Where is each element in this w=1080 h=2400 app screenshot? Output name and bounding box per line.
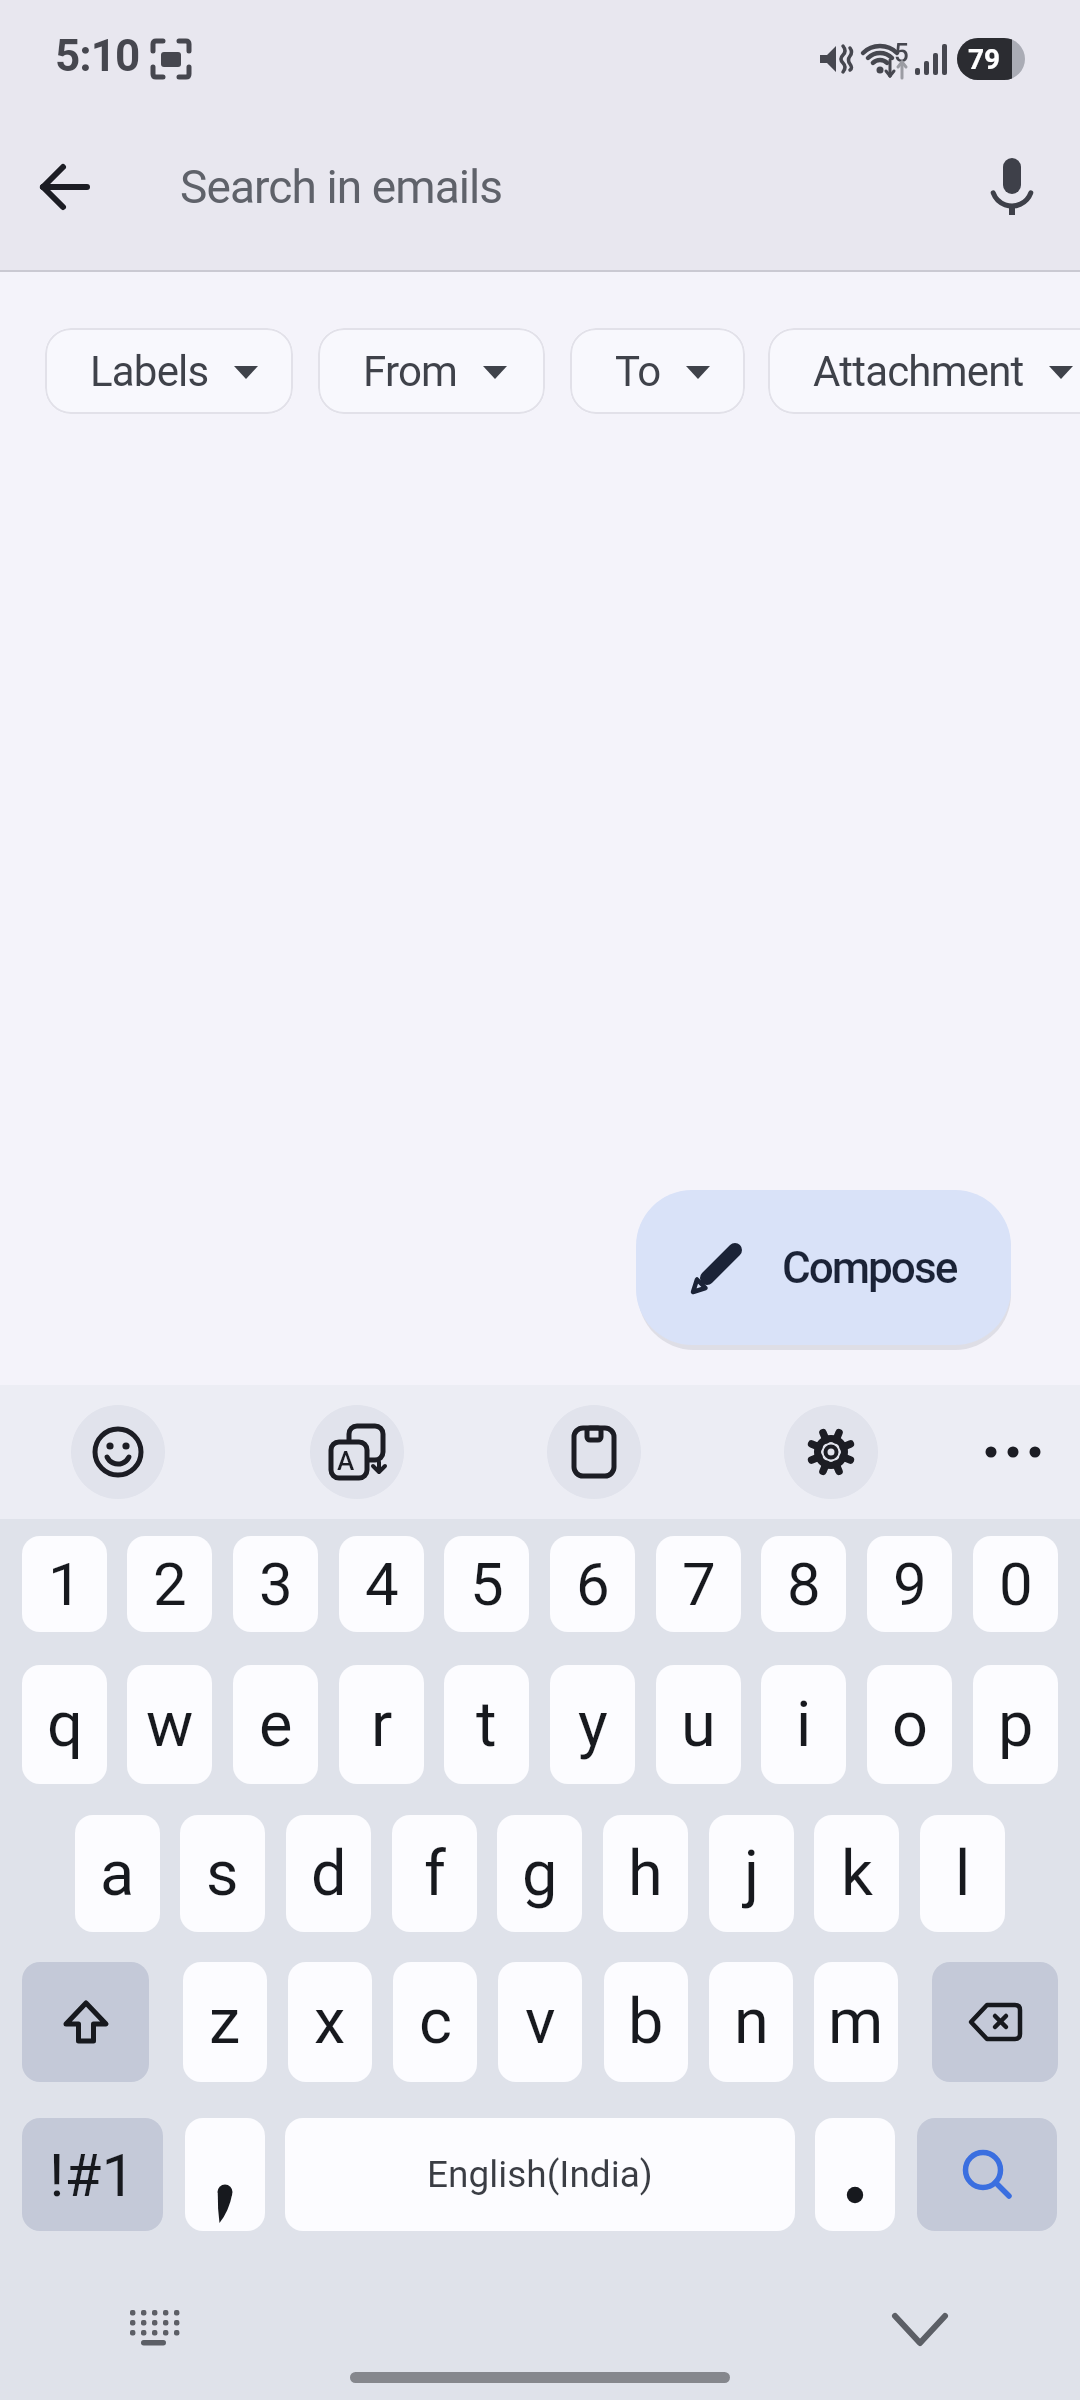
button[interactable]: q: [22, 1665, 107, 1784]
button[interactable]: k: [814, 1815, 899, 1932]
button[interactable]: s: [180, 1815, 265, 1932]
staticText: Search in emails: [180, 160, 503, 214]
staticText: v: [525, 1985, 556, 2059]
button[interactable]: [815, 2118, 895, 2231]
staticText: 5:10: [55, 30, 140, 82]
button[interactable]: h: [603, 1815, 688, 1932]
staticText: A: [337, 1446, 355, 1476]
button[interactable]: [110, 2290, 200, 2370]
staticText: u: [681, 1688, 716, 1762]
staticText: English(India): [427, 2153, 653, 2196]
button[interactable]: English(India): [285, 2118, 795, 2231]
button[interactable]: [966, 1405, 1060, 1499]
staticText: To: [615, 347, 661, 396]
button[interactable]: a: [75, 1815, 160, 1932]
button[interactable]: From: [318, 328, 545, 414]
button[interactable]: Compose: [636, 1190, 1011, 1345]
button[interactable]: A: [310, 1405, 404, 1499]
staticText: x: [314, 1985, 346, 2059]
staticText: h: [628, 1837, 663, 1911]
staticText: 8: [787, 1549, 821, 1619]
staticText: 5: [470, 1549, 504, 1619]
staticText: Attachment: [813, 347, 1024, 396]
staticText: g: [522, 1837, 558, 1911]
staticText: 9: [893, 1549, 927, 1619]
button[interactable]: x: [288, 1962, 372, 2082]
button[interactable]: [71, 1405, 165, 1499]
staticText: p: [998, 1688, 1034, 1762]
staticText: f: [424, 1837, 446, 1911]
staticText: a: [100, 1837, 135, 1911]
button[interactable]: 5: [444, 1536, 529, 1632]
staticText: s: [206, 1837, 239, 1911]
button[interactable]: t: [444, 1665, 529, 1784]
button[interactable]: i: [761, 1665, 846, 1784]
staticText: q: [47, 1688, 83, 1762]
staticText: t: [476, 1688, 497, 1762]
button[interactable]: 1: [22, 1536, 107, 1632]
button[interactable]: 0: [973, 1536, 1058, 1632]
staticText: w: [146, 1688, 194, 1762]
button[interactable]: p: [973, 1665, 1058, 1784]
staticText: i: [796, 1688, 812, 1762]
staticText: 6: [576, 1549, 610, 1619]
staticText: e: [259, 1688, 293, 1762]
button[interactable]: j: [709, 1815, 794, 1932]
button[interactable]: v: [498, 1962, 582, 2082]
staticText: 0: [999, 1549, 1033, 1619]
button[interactable]: l: [920, 1815, 1005, 1932]
button[interactable]: b: [604, 1962, 688, 2082]
button[interactable]: z: [183, 1962, 267, 2082]
staticText: From: [363, 347, 458, 396]
button[interactable]: c: [393, 1962, 477, 2082]
button[interactable]: n: [709, 1962, 793, 2082]
button[interactable]: u: [656, 1665, 741, 1784]
staticText: 7: [682, 1549, 716, 1619]
button[interactable]: 9: [867, 1536, 952, 1632]
button[interactable]: To: [570, 328, 745, 414]
button[interactable]: 7: [656, 1536, 741, 1632]
button[interactable]: w: [127, 1665, 212, 1784]
button[interactable]: Labels: [45, 328, 293, 414]
staticText: m: [828, 1985, 884, 2059]
button[interactable]: [784, 1405, 878, 1499]
button[interactable]: 6: [550, 1536, 635, 1632]
staticText: 2: [153, 1549, 187, 1619]
button[interactable]: [25, 147, 105, 227]
staticText: y: [578, 1688, 608, 1762]
button[interactable]: g: [497, 1815, 582, 1932]
staticText: 3: [259, 1549, 293, 1619]
button[interactable]: 2: [127, 1536, 212, 1632]
button[interactable]: r: [339, 1665, 424, 1784]
staticText: b: [628, 1985, 664, 2059]
button[interactable]: [547, 1405, 641, 1499]
button[interactable]: [185, 2118, 265, 2231]
staticText: o: [892, 1688, 928, 1762]
button[interactable]: 8: [761, 1536, 846, 1632]
staticText: 4: [365, 1549, 399, 1619]
button[interactable]: m: [814, 1962, 898, 2082]
button[interactable]: [130, 135, 950, 240]
button[interactable]: [22, 1962, 149, 2082]
staticText: r: [371, 1688, 393, 1762]
staticText: z: [209, 1985, 241, 2059]
staticText: k: [841, 1837, 873, 1911]
button[interactable]: !#1: [22, 2118, 163, 2231]
staticText: 1: [48, 1549, 82, 1619]
button[interactable]: [972, 147, 1052, 227]
staticText: !#1: [49, 2140, 136, 2210]
staticText: n: [734, 1985, 769, 2059]
button[interactable]: 4: [339, 1536, 424, 1632]
button[interactable]: 3: [233, 1536, 318, 1632]
button[interactable]: f: [392, 1815, 477, 1932]
button[interactable]: d: [286, 1815, 371, 1932]
button[interactable]: o: [867, 1665, 952, 1784]
button[interactable]: [880, 2295, 960, 2365]
button[interactable]: Attachment: [768, 328, 1080, 414]
button[interactable]: y: [550, 1665, 635, 1784]
button[interactable]: [932, 1962, 1058, 2082]
button[interactable]: e: [233, 1665, 318, 1784]
button[interactable]: [917, 2118, 1057, 2231]
staticText: Labels: [90, 347, 209, 396]
staticText: d: [311, 1837, 347, 1911]
